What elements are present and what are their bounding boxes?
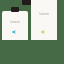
button[interactable] [22, 0, 31, 5]
button[interactable] [11, 7, 19, 12]
staticText: Lorem [2, 20, 28, 24]
other: Play [12, 30, 16, 34]
other: Play [41, 30, 45, 34]
button[interactable] [2, 11, 28, 40]
staticText: Lorem [31, 12, 57, 16]
button[interactable] [31, 0, 57, 40]
